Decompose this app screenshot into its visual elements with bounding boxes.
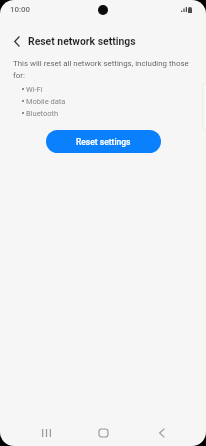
staticText: 10:00 [10, 5, 31, 14]
button[interactable]: Recent apps [30, 417, 62, 446]
staticText: Mobile data [26, 97, 66, 106]
button[interactable]: Home [87, 417, 119, 446]
staticText: Bluetooth [26, 109, 59, 118]
staticText: Wi-Fi [26, 85, 43, 94]
button[interactable]: Reset settings [46, 130, 161, 153]
button[interactable]: Back [145, 417, 177, 446]
staticText: This will reset all network settings, in… [13, 59, 193, 80]
button[interactable]: Navigate up [2, 27, 30, 55]
staticText: Reset settings [76, 137, 131, 147]
staticText: Reset network settings [28, 35, 136, 47]
